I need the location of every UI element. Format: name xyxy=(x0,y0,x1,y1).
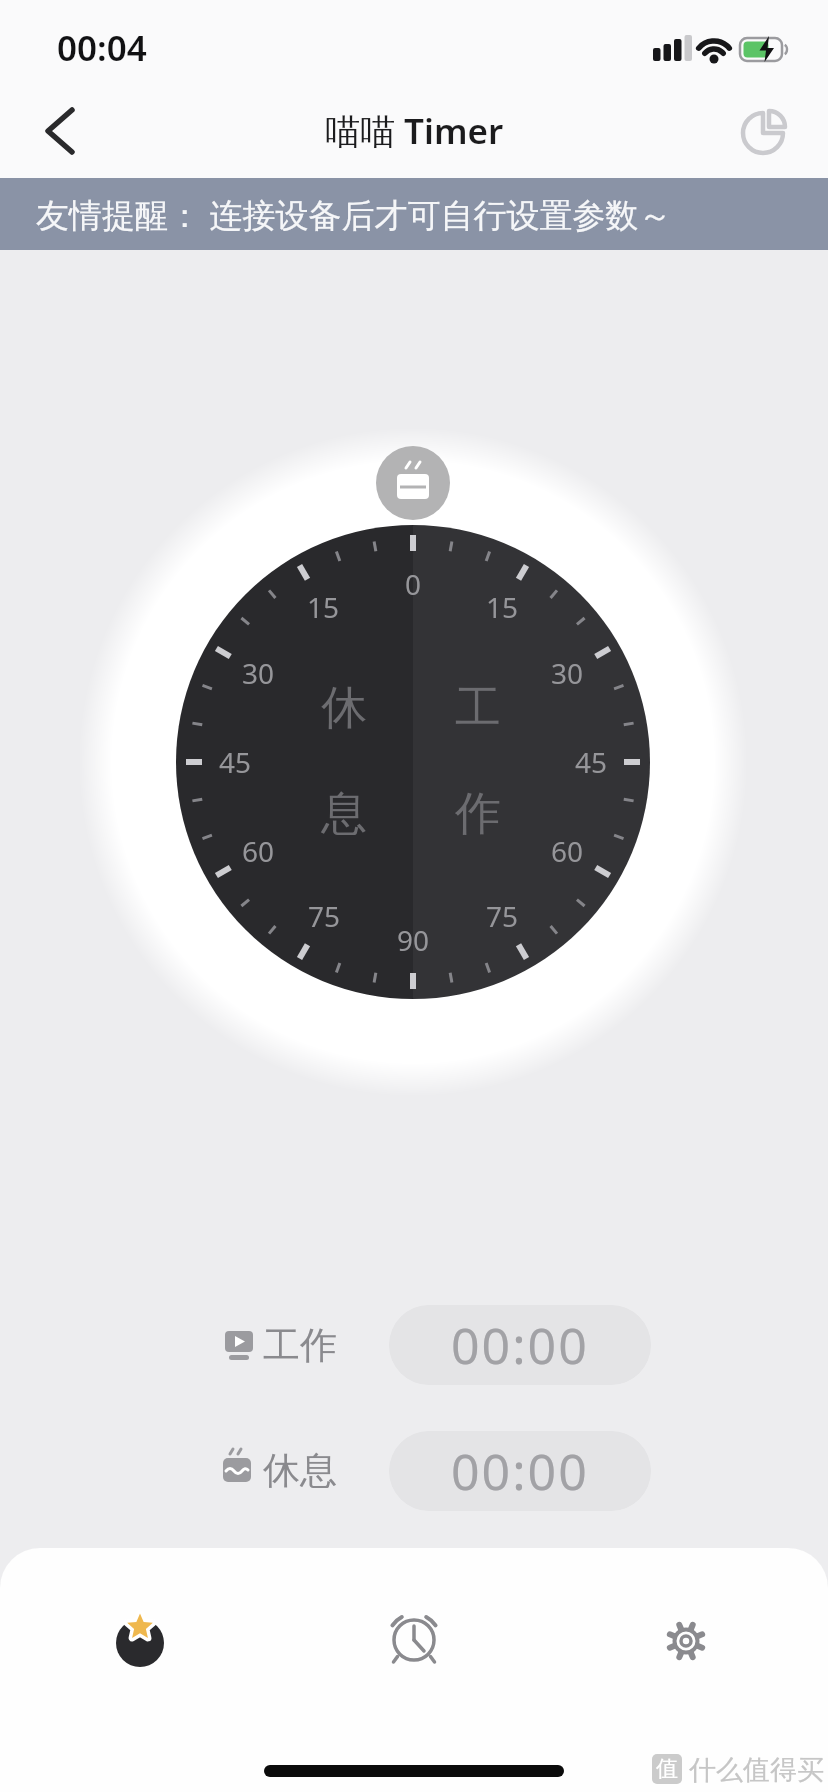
staticText: 休 xyxy=(321,679,367,737)
staticText: 息 xyxy=(321,785,367,843)
staticText: 0 xyxy=(405,565,422,603)
staticText: 工 xyxy=(455,679,501,737)
button[interactable] xyxy=(24,98,94,164)
staticText: 00:04 xyxy=(57,24,147,72)
staticText: 75 xyxy=(486,897,519,935)
button[interactable] xyxy=(631,1593,741,1693)
staticText: 30 xyxy=(551,654,584,692)
staticText: 75 xyxy=(308,897,341,935)
staticText: 60 xyxy=(242,832,275,870)
button[interactable]: 00:00 xyxy=(389,1305,651,1385)
button[interactable] xyxy=(85,1588,195,1688)
staticText: 什么值得买 xyxy=(682,1750,825,1787)
staticText: 值 xyxy=(656,1755,678,1783)
staticText: 喵喵 Timer xyxy=(325,107,504,155)
staticText: 00:00 xyxy=(451,1437,589,1505)
staticText: 15 xyxy=(486,588,519,626)
staticText: 15 xyxy=(307,588,340,626)
staticText: 友情提醒： 连接设备后才可自行设置参数～ xyxy=(36,192,672,237)
staticText: 45 xyxy=(575,743,608,781)
staticText: 00:00 xyxy=(451,1311,589,1379)
staticText: 休息 xyxy=(263,1447,337,1494)
button[interactable] xyxy=(736,104,792,160)
staticText: 60 xyxy=(551,832,584,870)
staticText: 90 xyxy=(397,921,430,959)
staticText: 工作 xyxy=(263,1322,337,1369)
staticText: 30 xyxy=(242,654,275,692)
staticText: 45 xyxy=(219,743,252,781)
button[interactable] xyxy=(359,1593,469,1693)
staticText: 作 xyxy=(455,785,501,843)
button[interactable]: 00:00 xyxy=(389,1431,651,1511)
